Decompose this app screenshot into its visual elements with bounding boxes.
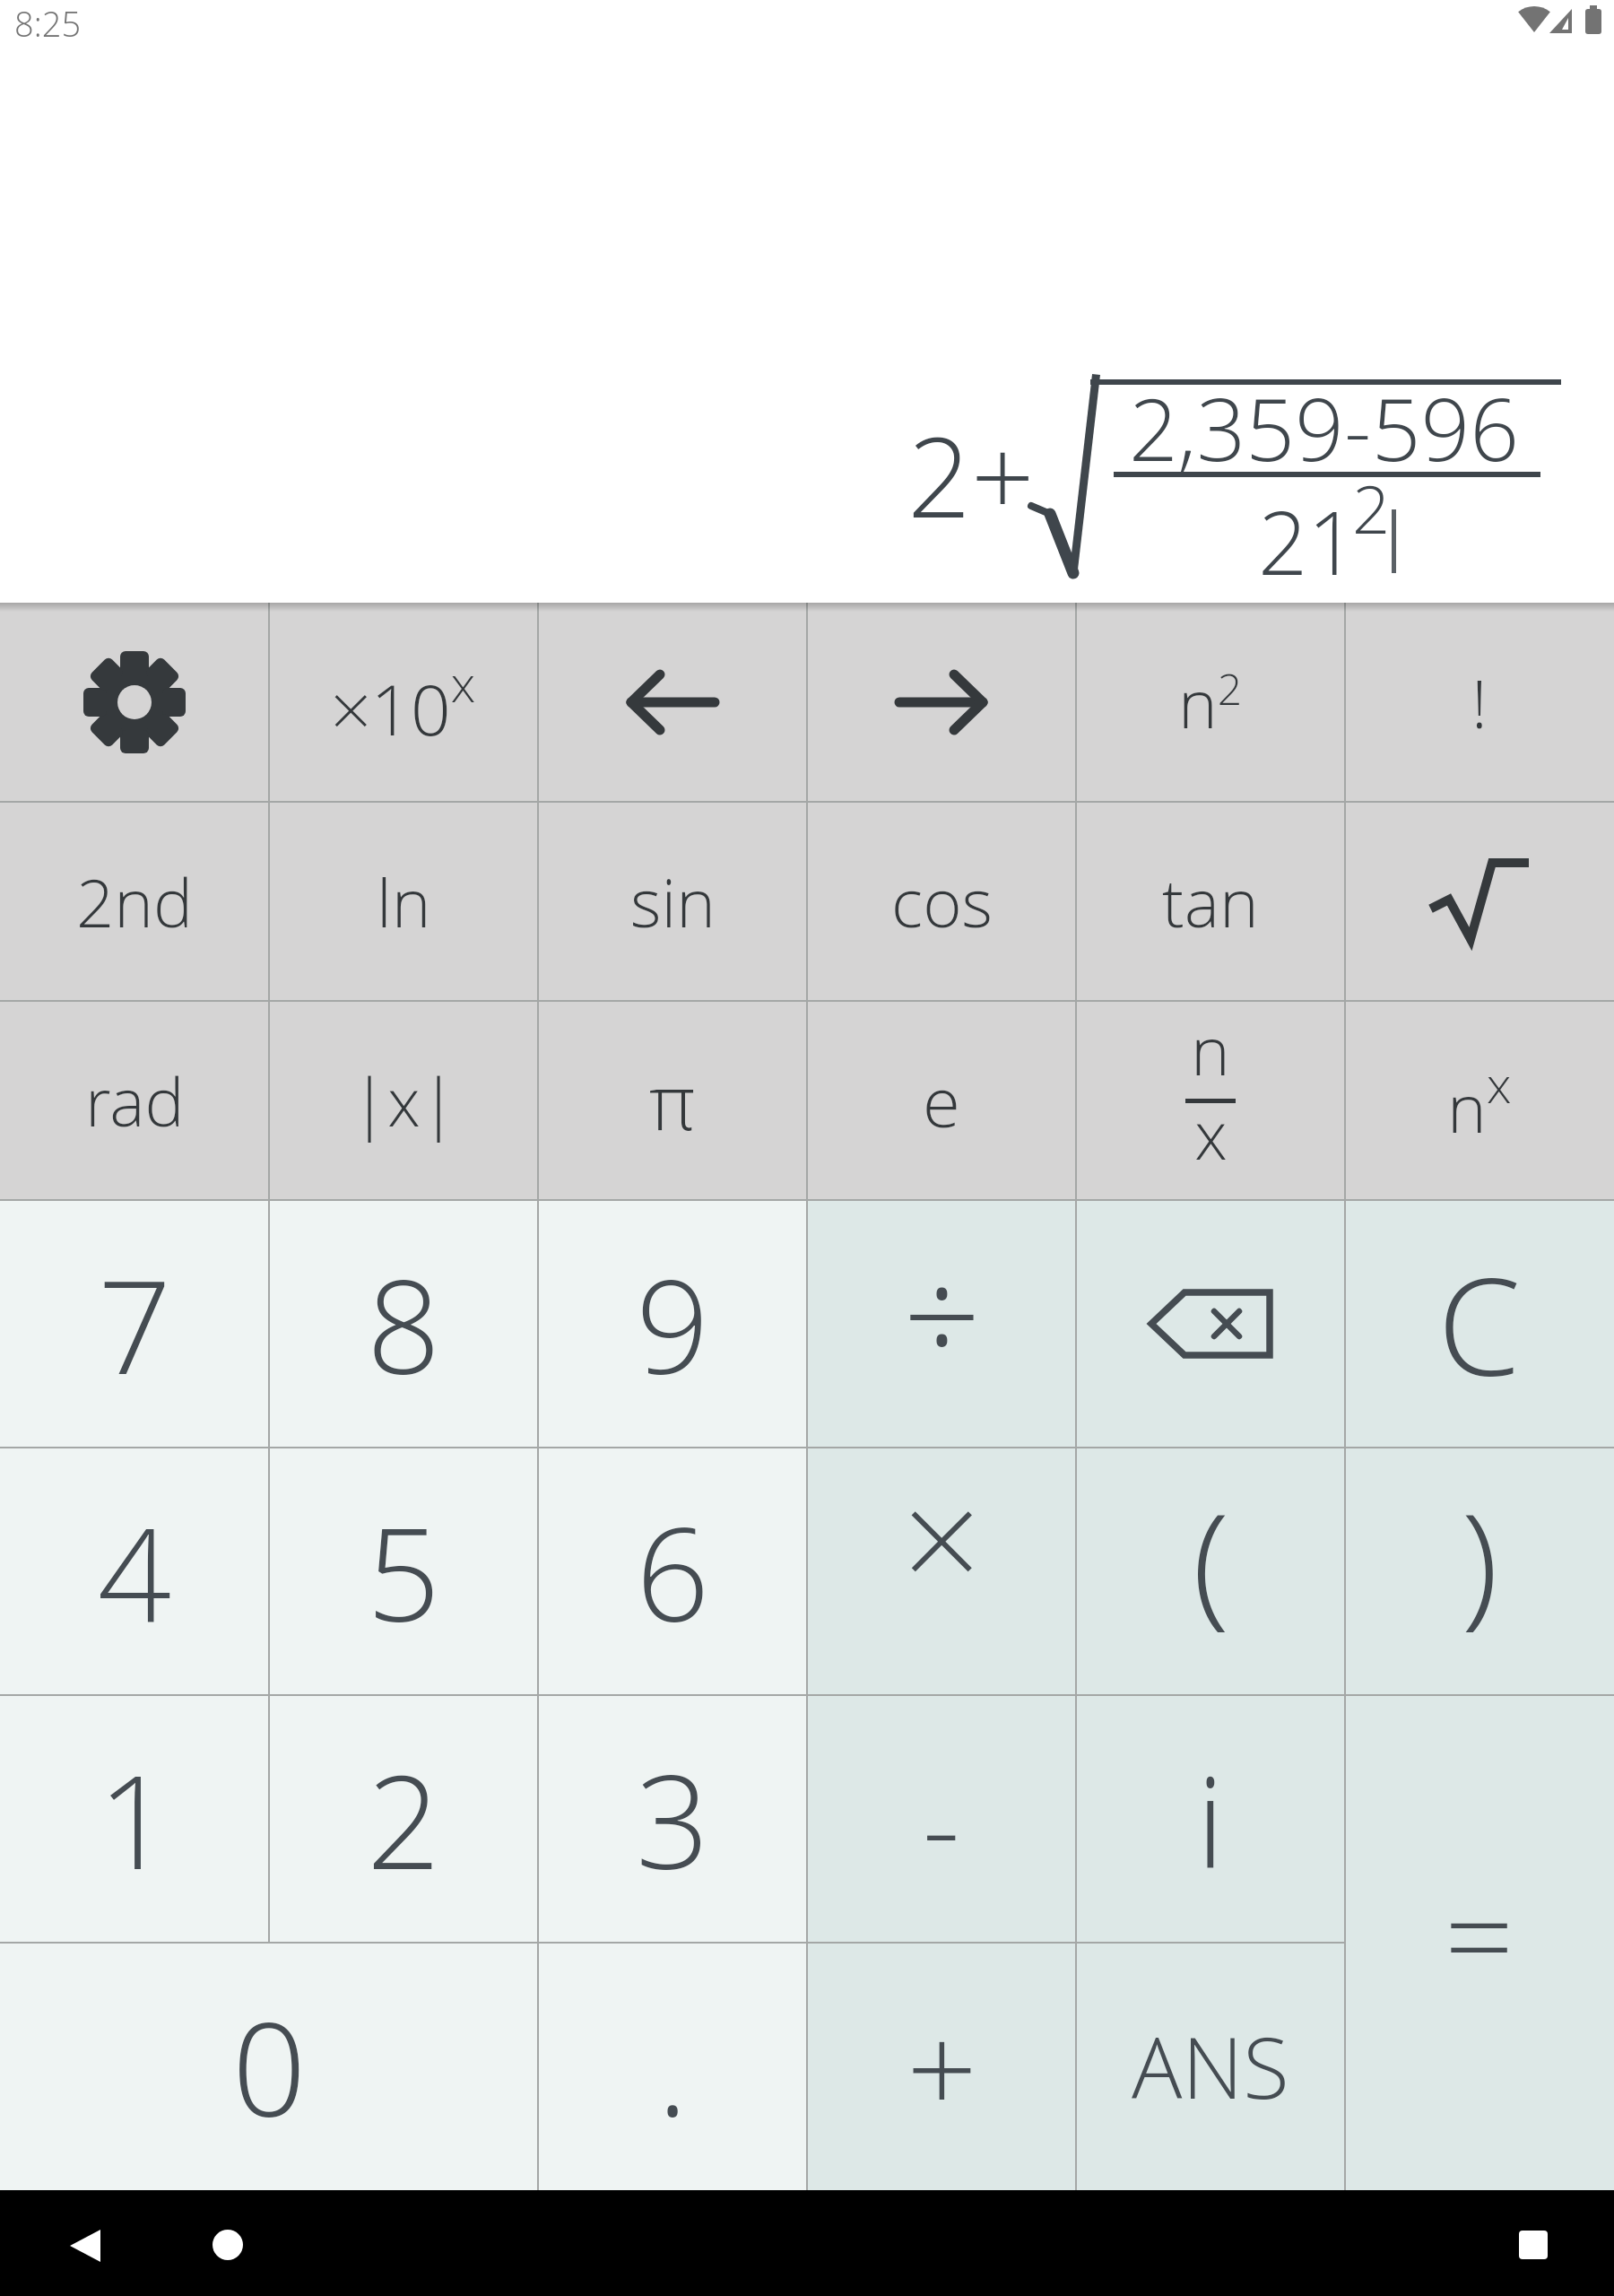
button[interactable]: π	[538, 1001, 807, 1200]
staticText: 1	[98, 1731, 172, 1907]
button[interactable]: (	[1076, 1448, 1345, 1695]
button[interactable]: n2	[1076, 603, 1345, 802]
staticText: sin	[630, 857, 716, 947]
button[interactable]: +	[807, 1943, 1076, 2190]
staticText: 2+	[907, 398, 1035, 550]
staticText: 21	[1258, 482, 1358, 600]
staticText: |x|	[351, 1056, 456, 1146]
button[interactable]: e	[807, 1001, 1076, 1200]
button[interactable]: 0	[0, 1943, 538, 2190]
staticText: 2	[1352, 463, 1391, 553]
staticText: 0	[232, 1979, 307, 2154]
staticText: 2,359-596	[1129, 369, 1520, 486]
staticText: 7	[98, 1236, 172, 1412]
button[interactable]: 9	[538, 1200, 807, 1448]
button[interactable]: n	[1076, 1001, 1345, 1200]
button[interactable]: 5	[269, 1448, 538, 1695]
button[interactable]: 3	[538, 1695, 807, 1943]
button[interactable]: ×	[807, 1448, 1076, 1695]
staticText: 2nd	[76, 857, 193, 947]
button[interactable]: rad	[0, 1001, 269, 1200]
button[interactable]: tan	[1076, 802, 1345, 1001]
button[interactable]: -	[807, 1695, 1076, 1943]
staticText: 9	[636, 1236, 710, 1412]
button[interactable]: )	[1345, 1448, 1614, 1695]
button[interactable]: 1	[0, 1695, 269, 1943]
staticText: =	[1445, 1851, 1514, 2016]
button[interactable]: ÷	[807, 1200, 1076, 1448]
staticText: i	[1196, 1734, 1225, 1905]
button[interactable]: 4	[0, 1448, 269, 1695]
button[interactable]: 2	[269, 1695, 538, 1943]
staticText: 5	[367, 1483, 441, 1659]
staticText: 8:25	[14, 0, 82, 47]
button[interactable]: ln	[269, 802, 538, 1001]
button[interactable]: 2nd	[0, 802, 269, 1001]
staticText: (	[1193, 1467, 1229, 1650]
staticText: ×10x	[331, 648, 476, 756]
staticText: x	[1194, 1089, 1228, 1179]
button[interactable]	[538, 603, 807, 802]
button[interactable]	[0, 603, 269, 802]
staticText: e	[923, 1055, 960, 1147]
staticText: n	[1191, 1004, 1230, 1095]
button[interactable]	[1076, 1200, 1345, 1448]
staticText: !	[1471, 657, 1488, 748]
staticText: +	[907, 1982, 977, 2151]
staticText: nx	[1447, 1049, 1512, 1152]
staticText: ln	[377, 857, 431, 947]
staticText: -	[922, 1742, 961, 1907]
button[interactable]	[807, 603, 1076, 802]
staticText: ÷	[903, 1220, 981, 1405]
staticText: cos	[891, 857, 993, 947]
button[interactable]: cos	[807, 802, 1076, 1001]
button[interactable]: nx	[1345, 1001, 1614, 1200]
staticText: 6	[636, 1483, 710, 1659]
staticText: n2	[1178, 657, 1243, 748]
button[interactable]: ANS	[1076, 1943, 1345, 2190]
button[interactable]: C	[1345, 1200, 1614, 1448]
button[interactable]: |x|	[269, 1001, 538, 1200]
staticText: 4	[98, 1483, 172, 1659]
staticText: ANS	[1132, 2009, 1289, 2124]
staticText: π	[649, 1049, 696, 1152]
staticText: ×	[904, 1447, 980, 1628]
button[interactable]: ×10x	[269, 603, 538, 802]
staticText: )	[1462, 1467, 1498, 1650]
button[interactable]: i	[1076, 1695, 1345, 1943]
button[interactable]	[1345, 802, 1614, 1001]
button[interactable]: .	[538, 1943, 807, 2190]
staticText: .	[657, 1979, 689, 2154]
staticText: 3	[636, 1731, 710, 1907]
staticText: 8	[367, 1236, 441, 1412]
button[interactable]: 7	[0, 1200, 269, 1448]
button[interactable]: 6	[538, 1448, 807, 1695]
staticText: C	[1437, 1232, 1522, 1415]
button[interactable]: !	[1345, 603, 1614, 802]
button[interactable]: =	[1345, 1695, 1614, 2190]
staticText: tan	[1162, 857, 1259, 947]
staticText: rad	[85, 1056, 185, 1146]
button[interactable]: sin	[538, 802, 807, 1001]
button[interactable]: 8	[269, 1200, 538, 1448]
staticText: 2	[367, 1731, 441, 1907]
